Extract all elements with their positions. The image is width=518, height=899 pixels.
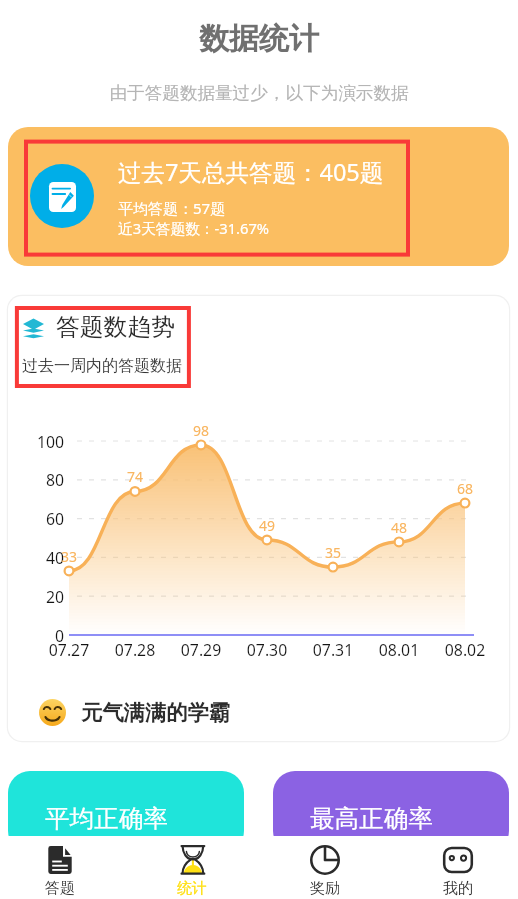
button[interactable]: 最高正确率 [273, 771, 509, 853]
other: 我的 [443, 845, 473, 875]
staticText: 49 [247, 516, 287, 535]
staticText: 40 [8, 547, 64, 569]
staticText: 08.02 [430, 639, 500, 661]
staticText: 最高正确率 [310, 803, 433, 834]
staticText: 由于答题数据量过少，以下为演示数据 [0, 82, 518, 104]
button[interactable]: 奖励 [265, 836, 384, 899]
button[interactable]: 答题 [0, 836, 119, 899]
staticText: 数据统计 [0, 20, 518, 58]
other: 统计 [177, 845, 207, 875]
staticText: 98 [181, 421, 221, 440]
staticText: 元气满满的学霸 [81, 699, 231, 726]
staticText: 60 [8, 508, 64, 530]
staticText: 07.29 [166, 639, 236, 661]
other: 奖励 [310, 845, 340, 875]
staticText: 近3天答题数：-31.67% [118, 218, 270, 238]
staticText: 平均答题：57题 [118, 198, 226, 218]
staticText: 74 [115, 467, 155, 486]
staticText: 68 [445, 479, 485, 498]
staticText: 48 [379, 518, 419, 537]
staticText: 07.30 [232, 639, 302, 661]
staticText: 80 [8, 469, 64, 491]
staticText: 07.27 [34, 639, 104, 661]
staticText: 统计 [177, 879, 207, 898]
button[interactable]: 统计 [132, 836, 251, 899]
staticText: 0 [8, 625, 64, 647]
staticText: 我的 [443, 879, 473, 898]
staticText: 100 [8, 431, 64, 453]
button[interactable]: 我的 [398, 836, 517, 899]
staticText: 过去一周内的答题数据 [22, 356, 182, 376]
staticText: 答题 [45, 879, 75, 898]
staticText: 35 [313, 543, 353, 562]
staticText: 答题数趋势 [56, 312, 175, 342]
staticText: 过去7天总共答题：405题 [118, 156, 384, 188]
staticText: 20 [8, 586, 64, 608]
button[interactable]: 平均正确率 [8, 771, 244, 853]
staticText: 平均正确率 [45, 803, 168, 834]
other: 答题 [45, 845, 75, 875]
staticText: 33 [49, 547, 89, 566]
staticText: 07.28 [100, 639, 170, 661]
staticText: 奖励 [310, 879, 340, 898]
staticText: 08.01 [364, 639, 434, 661]
staticText: 07.31 [298, 639, 368, 661]
button[interactable]: 过去7天总共答题：405题 [8, 127, 509, 266]
